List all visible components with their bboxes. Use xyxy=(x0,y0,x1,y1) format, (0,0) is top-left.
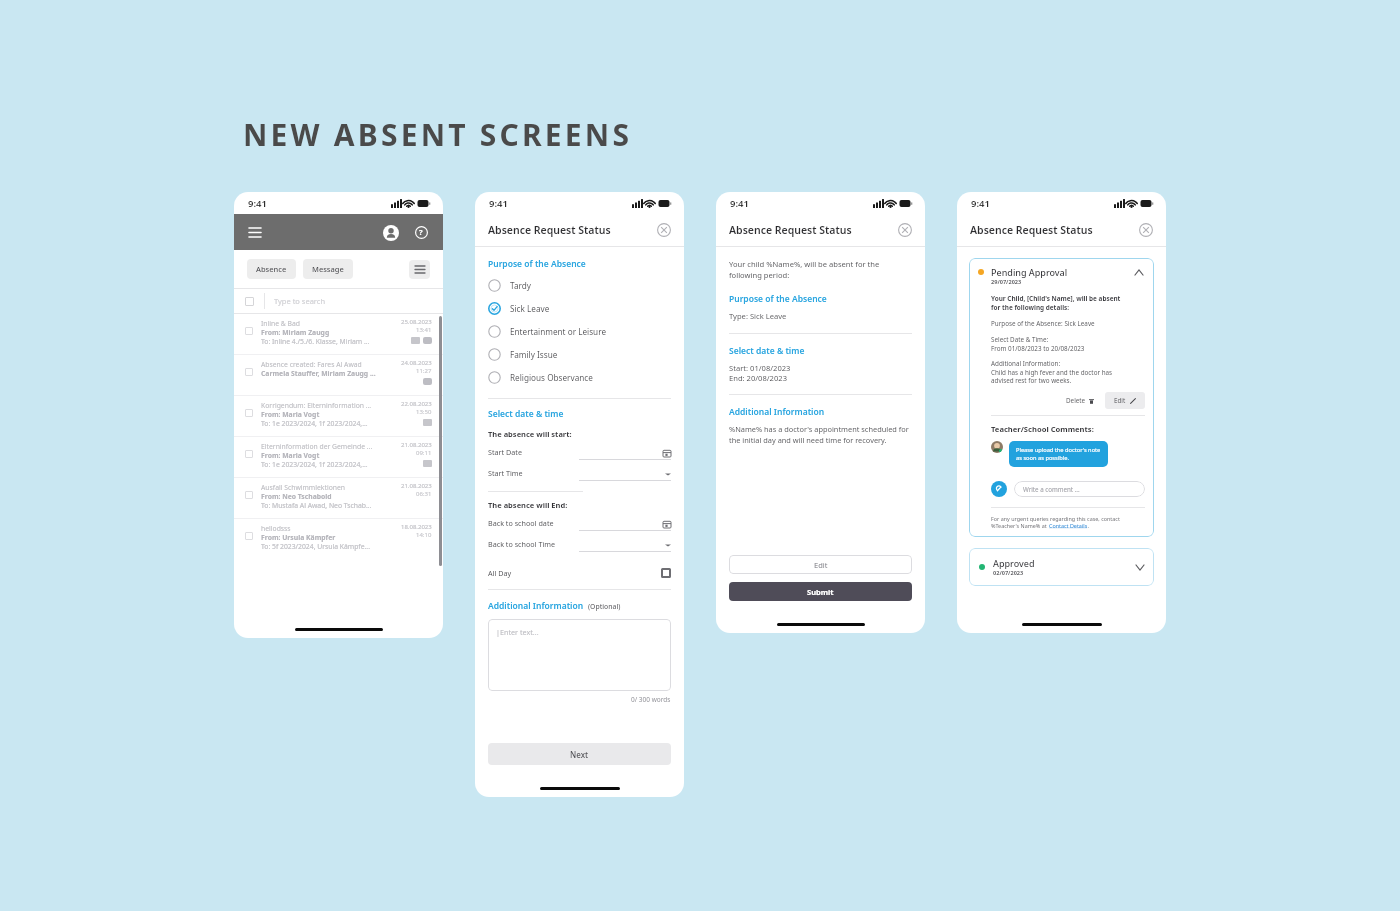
staticText: hellodsss xyxy=(261,524,291,533)
staticText: For any urgent queries regarding this ca… xyxy=(991,515,1120,522)
button[interactable]: Back to school Time xyxy=(488,531,671,552)
staticText: Purpose of the Absence xyxy=(729,293,827,305)
button[interactable]: Help xyxy=(412,223,430,241)
button[interactable]: Menu xyxy=(247,224,263,240)
button[interactable]: Collapse xyxy=(1133,266,1145,278)
staticText: Message xyxy=(312,264,344,274)
staticText: Religious Observance xyxy=(510,372,593,383)
staticText: |Enter text... xyxy=(496,627,539,637)
button[interactable]: Absence xyxy=(247,259,296,279)
staticText: Korrigendum: Elterninformation ... xyxy=(261,401,372,410)
staticText: 14:10 xyxy=(416,531,432,539)
staticText: To: 1e 2023/2024, 1f 2023/2024,... xyxy=(261,419,368,428)
staticText: Type to search xyxy=(274,296,326,306)
staticText: To: Mustafa Al Awad, Neo Tschab... xyxy=(261,501,372,510)
staticText: Pending Approval xyxy=(991,266,1068,278)
button[interactable]: Submit xyxy=(729,582,912,601)
button[interactable]: Edit xyxy=(729,555,912,574)
staticText: Back to school date xyxy=(488,518,554,528)
staticText: %Name% has a doctor's appointment schedu… xyxy=(729,424,909,445)
staticText: Absence created: Fares Al Awad xyxy=(261,360,362,369)
staticText: From: Maria Vogt xyxy=(261,410,320,419)
staticText: Start Time xyxy=(488,468,523,478)
staticText: 06:31 xyxy=(416,490,432,498)
staticText: Start: 01/08/2023 End: 20/08/2023 xyxy=(729,363,791,383)
staticText: Additional Information xyxy=(729,406,825,418)
staticText: 13:41 xyxy=(416,326,432,334)
staticText: Next xyxy=(570,749,589,760)
button[interactable]: Close xyxy=(898,223,912,237)
staticText: Edit xyxy=(814,560,828,570)
button[interactable]: Family Issue xyxy=(488,343,671,366)
staticText: 9:41 xyxy=(971,197,990,210)
staticText: Write a comment ... xyxy=(1023,485,1080,493)
staticText: Teacher/School Comments: xyxy=(991,424,1094,434)
staticText: Elterninformation der Gemeinde ... xyxy=(261,442,373,451)
button[interactable]: Attach file xyxy=(991,481,1007,497)
button[interactable]: Message xyxy=(303,259,353,279)
staticText: Additional Information: Child has a high… xyxy=(991,359,1113,384)
button[interactable]: Please upload the doctor's note as soon … xyxy=(1009,441,1108,467)
staticText: 9:41 xyxy=(730,197,749,210)
staticText: 09:11 xyxy=(416,449,432,457)
staticText: Absence Request Status xyxy=(970,223,1093,237)
staticText: Start Date xyxy=(488,447,522,457)
staticText: Inline & Bad xyxy=(261,319,300,328)
staticText: Approved xyxy=(993,557,1035,569)
staticText: Entertainment or Leisure xyxy=(510,326,607,337)
staticText: 02/07/2023 xyxy=(993,569,1024,577)
staticText: The absence will End: xyxy=(488,500,568,510)
button[interactable]: Delete xyxy=(1061,393,1099,408)
staticText: Sick Leave xyxy=(510,303,550,314)
staticText: Delete xyxy=(1066,396,1086,405)
staticText: Ausfall Schwimmlektionen xyxy=(261,483,345,492)
button[interactable]: Approved xyxy=(969,548,1154,586)
button[interactable]: Elterninformation der Gemeinde ... xyxy=(234,437,443,477)
staticText: 22.08.2023 xyxy=(401,400,432,408)
button[interactable]: Inline & Bad xyxy=(234,314,443,354)
staticText: Absence Request Status xyxy=(488,223,611,237)
button[interactable]: Tardy xyxy=(488,274,671,297)
button[interactable]: Start Date xyxy=(488,439,671,460)
button[interactable]: Close xyxy=(1139,223,1153,237)
button[interactable]: |Enter text... xyxy=(488,619,671,691)
button[interactable]: Sick Leave xyxy=(488,297,671,320)
button[interactable]: Back to school date xyxy=(488,510,671,531)
staticText: Absence Request Status xyxy=(729,223,852,237)
button[interactable]: Profile xyxy=(381,223,400,242)
staticText: Additional Information xyxy=(488,600,584,612)
button[interactable]: Filter xyxy=(409,260,430,279)
staticText: Select date & time xyxy=(488,408,564,420)
button[interactable]: Absence created: Fares Al Awad xyxy=(234,355,443,395)
staticText: Please upload the doctor's note as soon … xyxy=(1016,446,1101,462)
staticText: 9:41 xyxy=(489,197,508,210)
button[interactable]: Write a comment ... xyxy=(1014,481,1145,497)
staticText: Absence xyxy=(256,264,287,274)
staticText: To: 1e 2023/2024, 1f 2023/2024,... xyxy=(261,460,368,469)
button[interactable]: hellodsss xyxy=(234,519,443,559)
button[interactable]: Contact Details xyxy=(1049,522,1088,529)
button[interactable]: Next xyxy=(488,743,671,765)
staticText: %Teacher's Name% at xyxy=(991,522,1049,529)
button[interactable]: Korrigendum: Elterninformation ... xyxy=(234,396,443,436)
staticText: 29/07/2023 xyxy=(991,278,1022,286)
staticText: Select Date & Time: From 01/08/2023 to 2… xyxy=(991,335,1085,352)
staticText: The absence will start: xyxy=(488,429,572,439)
staticText: Back to school Time xyxy=(488,539,556,549)
button[interactable] xyxy=(245,297,254,306)
staticText: From: Miriam Zaugg xyxy=(261,328,330,337)
button[interactable]: Edit xyxy=(1105,392,1145,409)
button[interactable]: Start Time xyxy=(488,460,671,481)
staticText: 25.08.2023 xyxy=(401,318,432,326)
staticText: From: Maria Vogt xyxy=(261,451,320,460)
button[interactable]: Entertainment or Leisure xyxy=(488,320,671,343)
staticText: (Optional) xyxy=(588,602,621,611)
button[interactable]: Ausfall Schwimmlektionen xyxy=(234,478,443,518)
button[interactable]: Religious Observance xyxy=(488,366,671,389)
staticText: To: Inline 4./5./6. Klasse, Miriam ... xyxy=(261,337,370,346)
staticText: From: Neo Tschabold xyxy=(261,492,332,501)
staticText: 9:41 xyxy=(248,197,267,210)
button[interactable]: All Day xyxy=(488,568,671,578)
staticText: All Day xyxy=(488,568,512,578)
button[interactable]: Close xyxy=(657,223,671,237)
